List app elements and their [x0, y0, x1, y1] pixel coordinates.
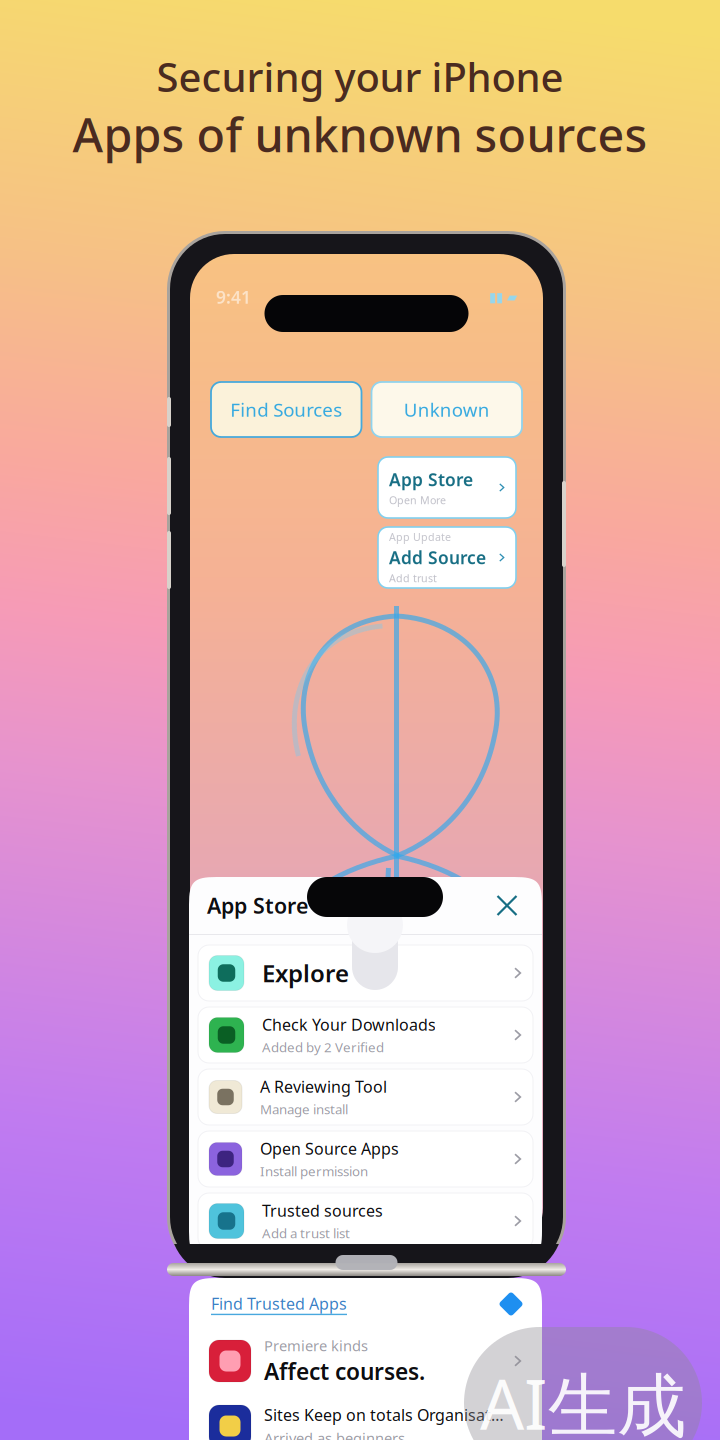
staticText: A Reviewing Tool: [260, 1076, 387, 1097]
button[interactable]: Explore: [198, 945, 533, 1001]
button[interactable]: Unknown: [371, 382, 522, 437]
button[interactable]: Sites Keep on totals Organisation and St…: [198, 1396, 533, 1440]
staticText: Unknown: [404, 397, 490, 422]
staticText: Explore: [262, 957, 349, 989]
staticText: Add a trust list: [262, 1224, 350, 1242]
button[interactable]: Find Trusted Apps: [189, 1278, 542, 1330]
button[interactable]: Close: [490, 888, 524, 922]
staticText: Added by 2 Verified: [262, 1038, 384, 1056]
staticText: Check Your Downloads: [262, 1014, 436, 1035]
button[interactable]: Open Source Apps: [198, 1131, 533, 1187]
staticText: Arrived as beginners: [264, 1428, 405, 1440]
staticText: Open More: [389, 493, 446, 507]
staticText: Open Source Apps: [260, 1138, 399, 1159]
button[interactable]: Find Sources: [211, 382, 361, 437]
button[interactable]: Trusted sources: [198, 1193, 533, 1249]
staticText: AI生成: [480, 1357, 686, 1440]
staticText: Add trust: [389, 571, 437, 585]
staticText: App Store: [207, 891, 308, 920]
staticText: ▮▮ ▰: [489, 289, 517, 304]
staticText: Manage install: [260, 1100, 348, 1118]
staticText: Sites Keep on totals Organisation and St…: [264, 1404, 505, 1425]
staticText: Apps of unknown sources: [72, 103, 647, 165]
button[interactable]: App Store: [378, 457, 516, 518]
staticText: Add Source: [389, 546, 486, 569]
staticText: 9:41: [216, 285, 251, 308]
staticText: Install permission: [260, 1162, 368, 1180]
button[interactable]: Check Your Downloads: [198, 1007, 533, 1063]
button[interactable]: A Reviewing Tool: [198, 1069, 533, 1125]
staticText: App Update: [389, 530, 451, 544]
button[interactable]: App Update: [378, 527, 516, 588]
staticText: Premiere kinds: [264, 1336, 368, 1355]
staticText: App Store: [389, 468, 473, 491]
staticText: Securing your iPhone: [156, 50, 563, 103]
staticText: Find Sources: [230, 397, 342, 422]
staticText: Find Trusted Apps: [211, 1293, 347, 1314]
button[interactable]: Premiere kinds: [198, 1330, 533, 1392]
staticText: Trusted sources: [262, 1200, 383, 1221]
staticText: Affect courses.: [264, 1356, 425, 1386]
